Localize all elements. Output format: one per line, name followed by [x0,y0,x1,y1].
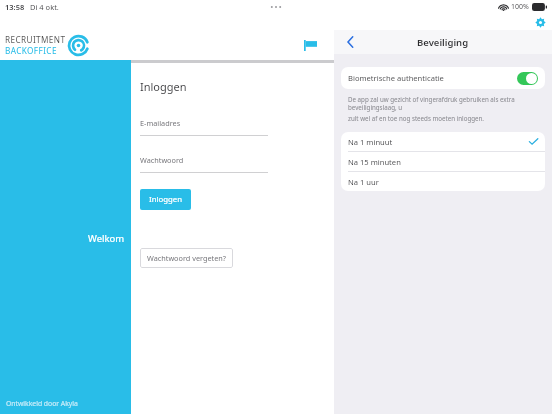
staticText: Di 4 okt. [30,2,59,12]
staticText: 13:58 [5,2,25,12]
staticText: 100% [511,2,529,12]
staticText: Inloggen [140,79,187,94]
staticText: Biometrische authenticatie [348,73,444,83]
button[interactable]: Taal wijzigen [299,34,321,56]
button[interactable]: Na 15 minuten [341,152,545,171]
staticText: Wachtwoord [140,155,184,165]
staticText: Na 1 uur [348,177,379,187]
button[interactable]: Biometrische authenticatie aan [517,72,538,85]
staticText: Ontwikkeld door Akyla [6,399,78,408]
staticText: Na 15 minuten [348,157,401,167]
staticText: E-mailadres [140,118,181,128]
staticText: Welkom [88,232,125,245]
staticText: zult wel af en toe nog steeds moeten inl… [348,114,484,122]
staticText: Wachtwoord vergeten? [147,253,226,263]
staticText: BACKOFFICE [5,45,57,56]
staticText: RECRUITMENT [5,34,66,45]
button[interactable]: Terug [340,32,360,52]
staticText: De app zal uw gezicht of vingerafdruk ge… [348,95,538,111]
staticText: Beveiliging [417,36,469,49]
button[interactable]: Instellingen [532,14,548,30]
button[interactable]: Na 1 minuut [341,132,545,151]
button[interactable]: Inloggen [140,189,191,210]
button[interactable]: Na 1 uur [341,172,545,191]
staticText: Inloggen [149,194,182,205]
button[interactable]: Biometrische authenticatie [341,67,545,89]
staticText: Na 1 minuut [348,137,393,147]
button[interactable]: Wachtwoord vergeten? [140,248,233,268]
